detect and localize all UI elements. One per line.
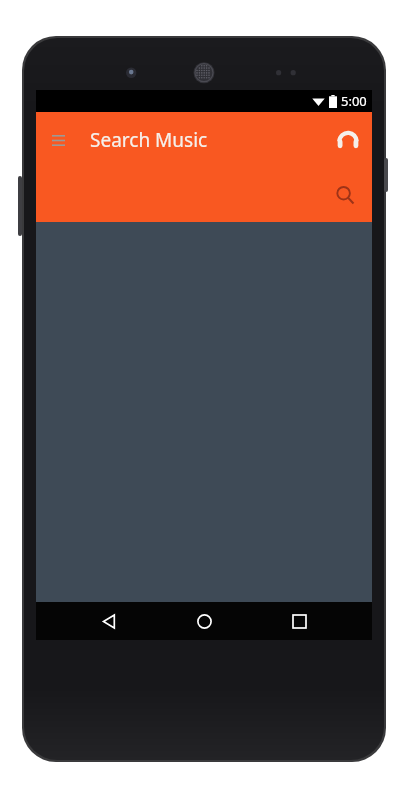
button[interactable]: Open navigation menu (36, 118, 80, 162)
button[interactable]: Recent apps (277, 602, 321, 640)
staticText: Search Music (90, 127, 208, 153)
button[interactable]: Search (324, 174, 366, 216)
button[interactable]: Back (87, 602, 131, 640)
button[interactable]: Home (182, 602, 226, 640)
button[interactable]: Headphones (324, 116, 372, 164)
staticText: 5:00 (341, 92, 367, 110)
